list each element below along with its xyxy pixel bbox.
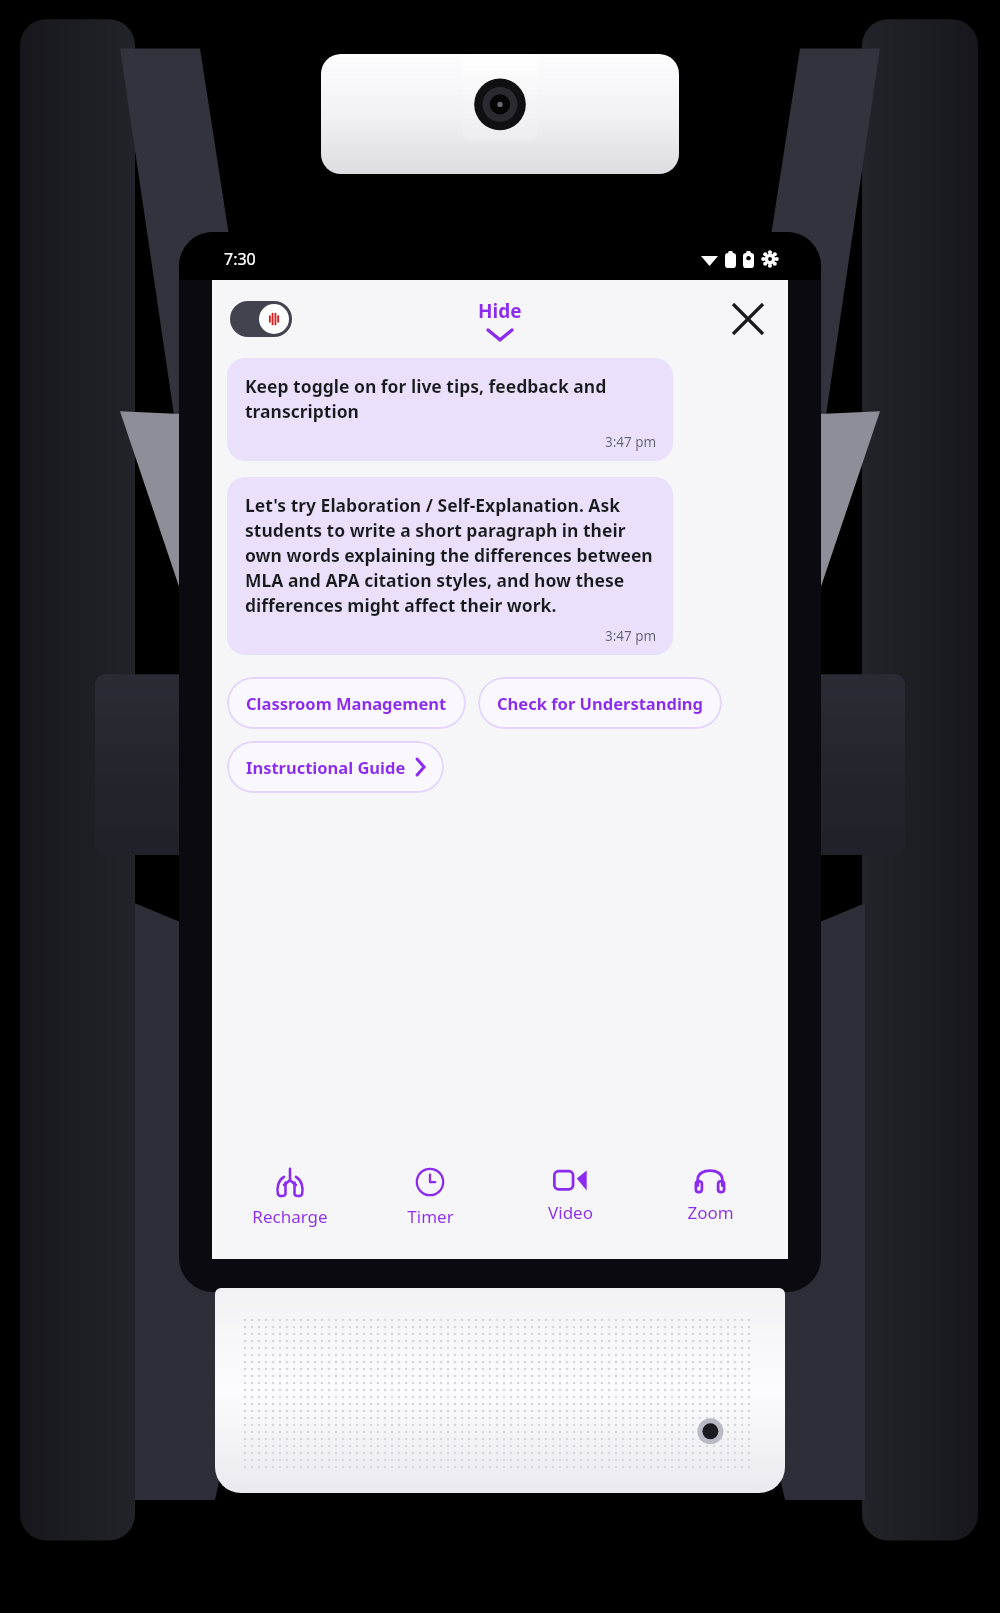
button[interactable]: Recharge [220,1145,360,1255]
staticText: 7:30 [224,248,256,270]
button[interactable]: Let's try Elaboration / Self-Explanation… [227,477,673,655]
button[interactable]: Check for Understanding [478,677,722,729]
staticText: Keep toggle on for live tips, feedback a… [245,374,659,423]
staticText: 3:47 pm [605,627,657,645]
staticText: Recharge [252,1205,328,1228]
staticText: Classroom Management [246,692,447,714]
staticText: Hide [478,298,522,324]
staticText: 3:47 pm [605,433,657,451]
button[interactable]: Classroom Management [227,677,466,729]
button[interactable]: Timer [360,1145,500,1255]
button[interactable]: Zoom [640,1145,780,1255]
staticText: Let's try Elaboration / Self-Explanation… [245,493,659,617]
button[interactable]: Video [500,1145,640,1255]
button[interactable]: Hide [478,298,522,341]
button[interactable]: Live transcription toggle [230,301,292,337]
button[interactable]: Keep toggle on for live tips, feedback a… [227,358,673,461]
staticText: Zoom [687,1201,734,1224]
staticText: Timer [407,1205,454,1228]
staticText: Video [548,1201,593,1224]
staticText: Instructional Guide [246,756,406,778]
button[interactable]: Close [724,295,772,343]
button[interactable]: Instructional Guide [227,741,444,793]
staticText: Check for Understanding [497,692,703,714]
